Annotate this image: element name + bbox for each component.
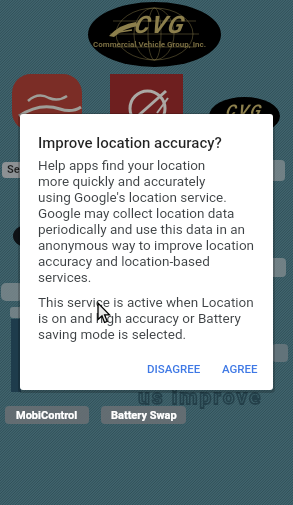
staticText: us improve [138, 385, 263, 410]
staticText: Battery Swap [111, 409, 177, 422]
button[interactable]: MobiControl [5, 406, 89, 424]
staticText: CVG [133, 11, 184, 39]
staticText: Commercial Vehicle Group, Inc. [93, 40, 207, 49]
staticText: Improve location accuracy? [38, 134, 222, 152]
staticText: Se [7, 163, 20, 176]
staticText: This service is active when Location is … [38, 294, 254, 342]
button[interactable]: DISAGREE [139, 353, 209, 384]
staticText: CVG [225, 101, 262, 120]
staticText: AGREE [222, 362, 258, 375]
staticText: DISAGREE [147, 362, 201, 375]
button[interactable]: AGREE [214, 353, 266, 384]
staticText: Help apps find your location more quickl… [38, 157, 255, 285]
button[interactable]: Battery Swap [101, 406, 186, 424]
staticText: MobiControl [16, 409, 78, 422]
